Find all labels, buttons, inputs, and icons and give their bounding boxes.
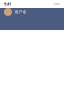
staticText: ••• bbox=[54, 1, 60, 7]
staticText: 用户名 bbox=[14, 9, 26, 14]
staticText: 9:41 bbox=[4, 1, 11, 7]
